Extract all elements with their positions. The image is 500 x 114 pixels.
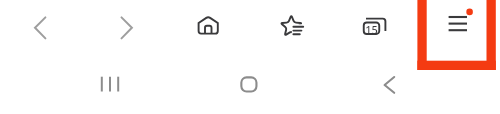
button[interactable]: Tabs: [347, 6, 391, 50]
button[interactable]: Forward: [101, 6, 145, 50]
staticText: 15: [365, 22, 378, 35]
button[interactable]: Home: [182, 6, 226, 50]
button[interactable]: Back: [20, 6, 64, 50]
button[interactable]: Bookmarks: [266, 6, 310, 50]
button[interactable]: Home screen: [227, 62, 271, 106]
button[interactable]: Recent apps: [88, 62, 132, 106]
button[interactable]: Back: [367, 62, 411, 106]
button[interactable]: Menu: [436, 6, 480, 50]
